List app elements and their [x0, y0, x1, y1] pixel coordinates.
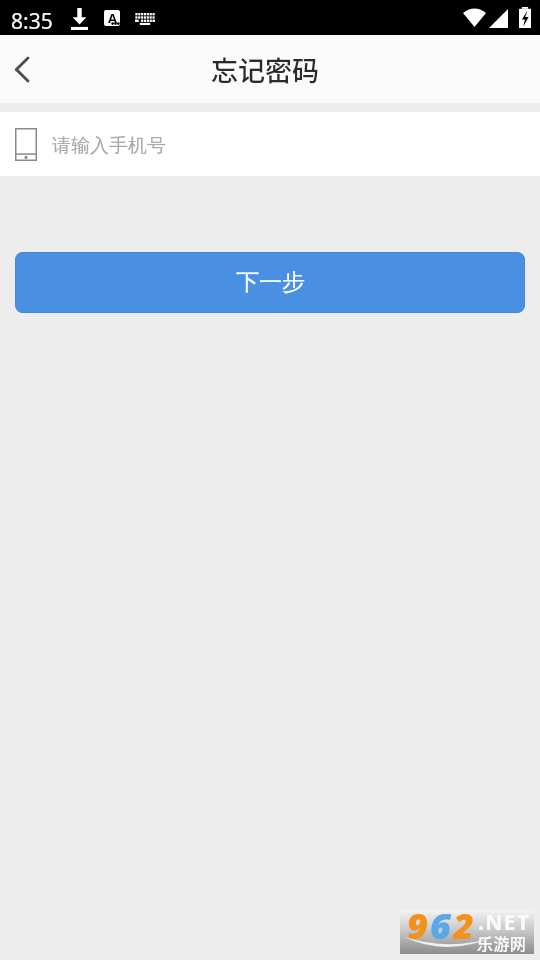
staticText: 2 — [453, 901, 476, 945]
staticText: 请输入手机号 — [52, 134, 166, 158]
staticText: 8:35 — [11, 7, 53, 36]
staticText: .NET — [478, 908, 531, 937]
staticText: 乐游网 — [477, 931, 527, 954]
button[interactable]: 下一步 — [15, 252, 525, 313]
button[interactable]: 请输入手机号 — [0, 112, 540, 176]
staticText: 6 — [430, 901, 453, 945]
staticText: 下一步 — [236, 268, 305, 297]
button[interactable]: Back — [0, 39, 48, 99]
staticText: 9 — [407, 901, 430, 945]
staticText: 忘记密码 — [211, 50, 319, 89]
staticText: A — [108, 10, 117, 25]
